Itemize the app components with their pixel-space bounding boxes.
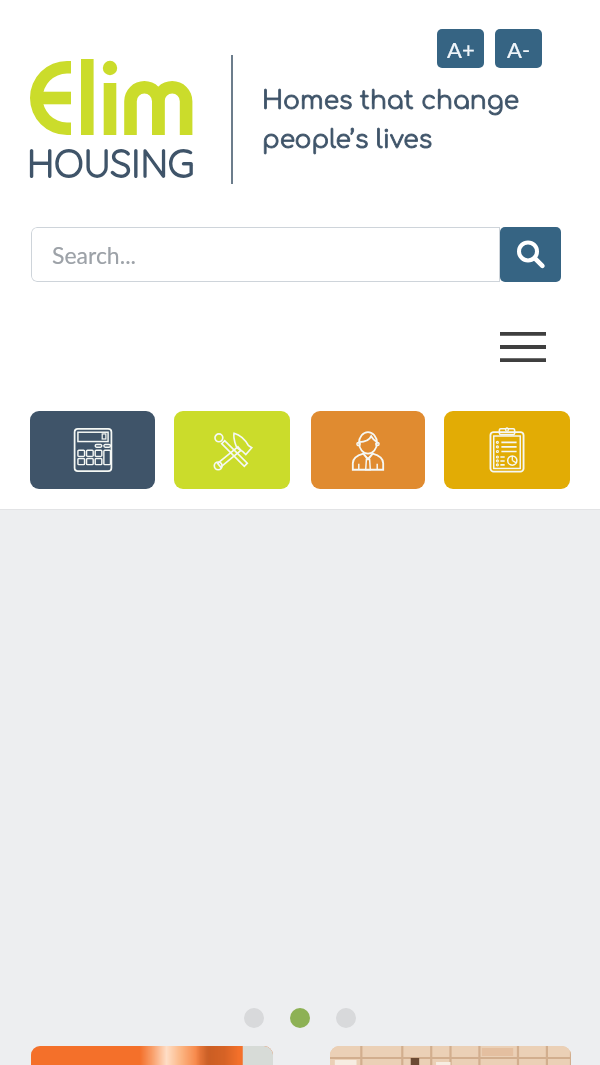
button[interactable]: [330, 1046, 571, 1065]
staticText: HOUSING: [27, 139, 195, 187]
button[interactable]: [244, 1008, 264, 1028]
button[interactable]: A+: [437, 29, 484, 68]
button[interactable]: Contact us: [311, 411, 425, 489]
staticText: people’s lives: [262, 126, 433, 154]
staticText: Homes that change: [262, 87, 520, 115]
button[interactable]: [336, 1008, 356, 1028]
other: Elim Housing: [30, 59, 194, 136]
button[interactable]: A-: [495, 29, 542, 68]
button[interactable]: Calculator: [30, 411, 155, 489]
button[interactable]: Forms: [444, 411, 570, 489]
button[interactable]: Search: [500, 227, 561, 282]
staticText: people’s lives: [262, 126, 433, 154]
staticText: A+: [447, 36, 475, 62]
button[interactable]: [31, 1046, 273, 1065]
staticText: HOUSING: [27, 139, 195, 187]
button[interactable]: Repairs: [174, 411, 290, 489]
button[interactable]: Open menu: [489, 317, 557, 377]
staticText: Search...: [52, 241, 136, 269]
button[interactable]: [290, 1008, 310, 1028]
staticText: Homes that change: [262, 87, 520, 115]
button[interactable]: Search...: [31, 227, 500, 282]
staticText: A-: [507, 36, 531, 62]
